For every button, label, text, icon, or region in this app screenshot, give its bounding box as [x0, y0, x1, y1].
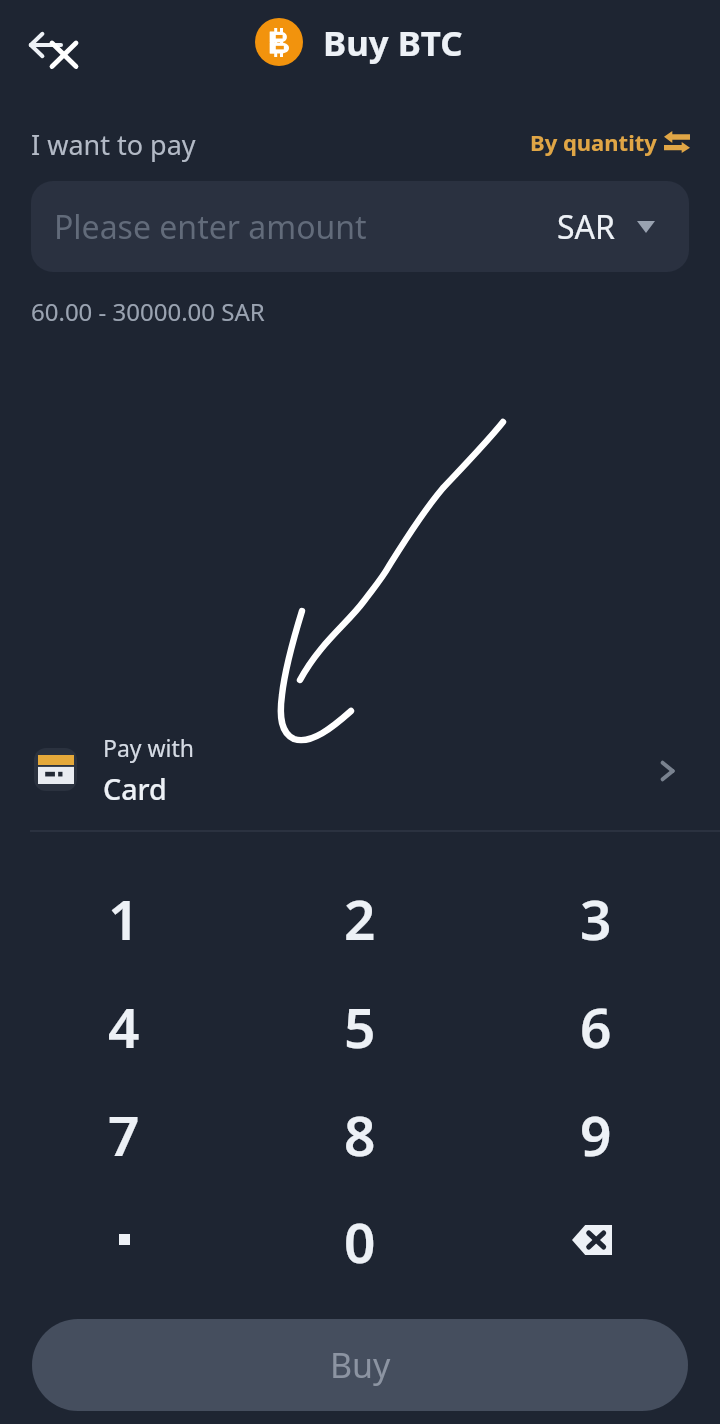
- staticText: Pay with: [103, 732, 195, 763]
- staticText: 4: [108, 989, 140, 1064]
- button[interactable]: 5: [242, 972, 478, 1080]
- button[interactable]: 1: [6, 864, 242, 972]
- staticText: 7: [108, 1097, 140, 1172]
- staticText: 0: [344, 1204, 376, 1279]
- button[interactable]: 0: [242, 1188, 478, 1295]
- staticText: I want to pay: [31, 126, 196, 163]
- button[interactable]: 3: [478, 864, 714, 972]
- staticText: 8: [344, 1097, 376, 1172]
- button[interactable]: Decimal point: [6, 1188, 242, 1295]
- staticText: Buy: [330, 1342, 391, 1388]
- staticText: 1: [108, 881, 140, 956]
- button[interactable]: Back: [17, 17, 73, 73]
- button[interactable]: 2: [242, 864, 478, 972]
- button[interactable]: 9: [478, 1080, 714, 1188]
- button[interactable]: 7: [6, 1080, 242, 1188]
- staticText: Buy BTC: [323, 19, 463, 66]
- staticText: 60.00 - 30000.00 SAR: [31, 295, 265, 328]
- staticText: 9: [580, 1097, 612, 1172]
- staticText: 3: [580, 881, 612, 956]
- staticText: 2: [344, 881, 376, 956]
- other: Choose payment method: [654, 758, 680, 784]
- button[interactable]: Buy: [32, 1319, 688, 1411]
- staticText: Card: [103, 769, 167, 808]
- staticText: SAR: [557, 205, 615, 249]
- button[interactable]: 8: [242, 1080, 478, 1188]
- button[interactable]: SAR: [557, 181, 689, 272]
- staticText: By quantity: [530, 127, 657, 157]
- staticText: Please enter amount: [54, 205, 367, 249]
- button[interactable]: Pay with: [0, 736, 720, 820]
- other: Backspace: [572, 1225, 612, 1255]
- button[interactable]: Backspace: [478, 1188, 714, 1295]
- staticText: 5: [344, 989, 376, 1064]
- button[interactable]: 4: [6, 972, 242, 1080]
- button[interactable]: By quantity: [530, 127, 690, 157]
- button[interactable]: 6: [478, 972, 714, 1080]
- button[interactable]: Please enter amount: [31, 181, 689, 272]
- staticText: 6: [580, 989, 612, 1064]
